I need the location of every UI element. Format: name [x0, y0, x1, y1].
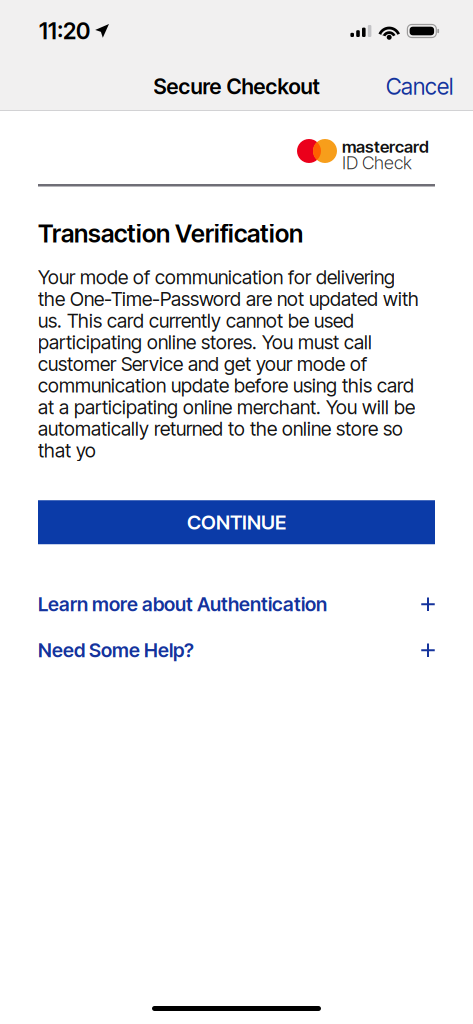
button[interactable]: Need Some Help?: [38, 636, 435, 664]
staticText: Secure Checkout: [153, 74, 319, 99]
button[interactable]: Cancel: [386, 65, 453, 108]
staticText: mastercard: [342, 136, 429, 157]
staticText: CONTINUE: [187, 510, 286, 534]
staticText: 11:20: [39, 17, 90, 45]
staticText: Transaction Verification: [38, 218, 303, 248]
staticText: Your mode of communication for deliverin…: [38, 266, 419, 461]
staticText: Need Some Help?: [38, 638, 194, 662]
staticText: ID Check: [342, 152, 412, 173]
staticText: Cancel: [386, 73, 453, 100]
staticText: Learn more about Authentication: [38, 592, 327, 616]
button[interactable]: CONTINUE: [38, 500, 435, 544]
button[interactable]: Learn more about Authentication: [38, 590, 435, 618]
